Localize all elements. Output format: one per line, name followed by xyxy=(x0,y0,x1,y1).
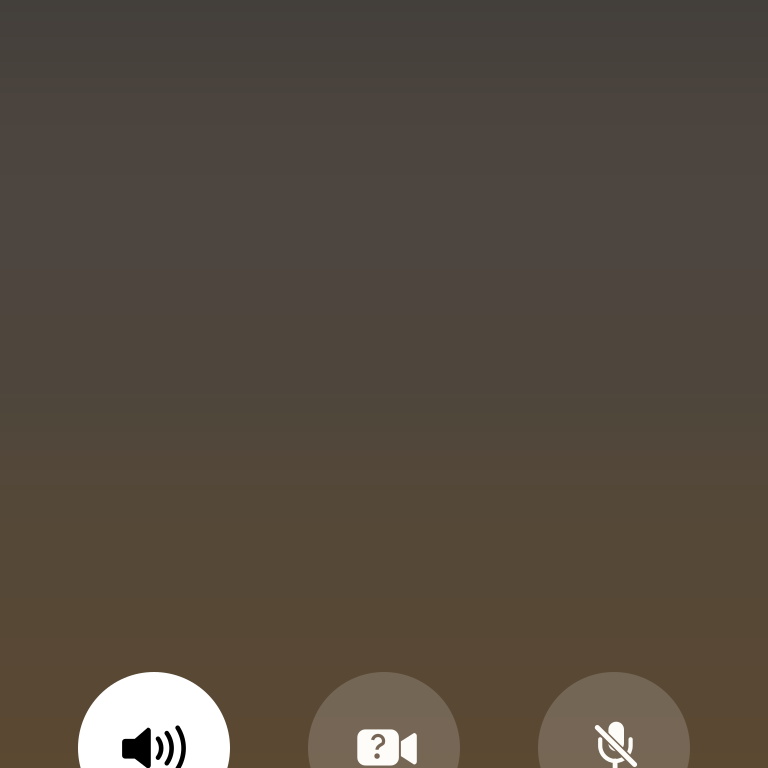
button[interactable]: Speaker xyxy=(78,672,230,768)
button[interactable]: Turn Camera On xyxy=(308,672,460,768)
button[interactable]: Unmute xyxy=(538,672,690,768)
